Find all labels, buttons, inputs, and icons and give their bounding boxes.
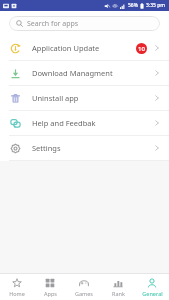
button[interactable]: Help and Feedbak — [0, 111, 169, 135]
staticText: Help and Feedbak — [32, 118, 153, 128]
button[interactable]: Rank — [101, 274, 135, 300]
button[interactable]: General — [135, 274, 169, 300]
staticText: General — [142, 290, 163, 297]
staticText: Apps — [44, 290, 57, 297]
button[interactable]: Games — [67, 274, 101, 300]
staticText: 56% — [128, 2, 138, 9]
staticText: Uninstall app — [32, 93, 153, 103]
button[interactable]: Application Update — [0, 36, 169, 60]
staticText: Home — [9, 290, 25, 297]
staticText: Download Managment — [32, 68, 153, 78]
button[interactable]: Settings — [0, 136, 169, 160]
staticText: 10 — [138, 45, 145, 53]
button[interactable]: Home — [0, 274, 33, 300]
staticText: 3:35 pm — [146, 2, 166, 9]
button[interactable]: Download Managment — [0, 61, 169, 85]
button[interactable]: Apps — [33, 274, 67, 300]
staticText: Application Update — [32, 43, 136, 53]
staticText: Rank — [112, 290, 125, 297]
staticText: Settings — [32, 143, 153, 153]
staticText: Games — [75, 290, 93, 297]
staticText: Search for apps — [27, 19, 79, 29]
button[interactable]: Search for apps — [9, 16, 160, 31]
button[interactable]: Uninstall app — [0, 86, 169, 110]
